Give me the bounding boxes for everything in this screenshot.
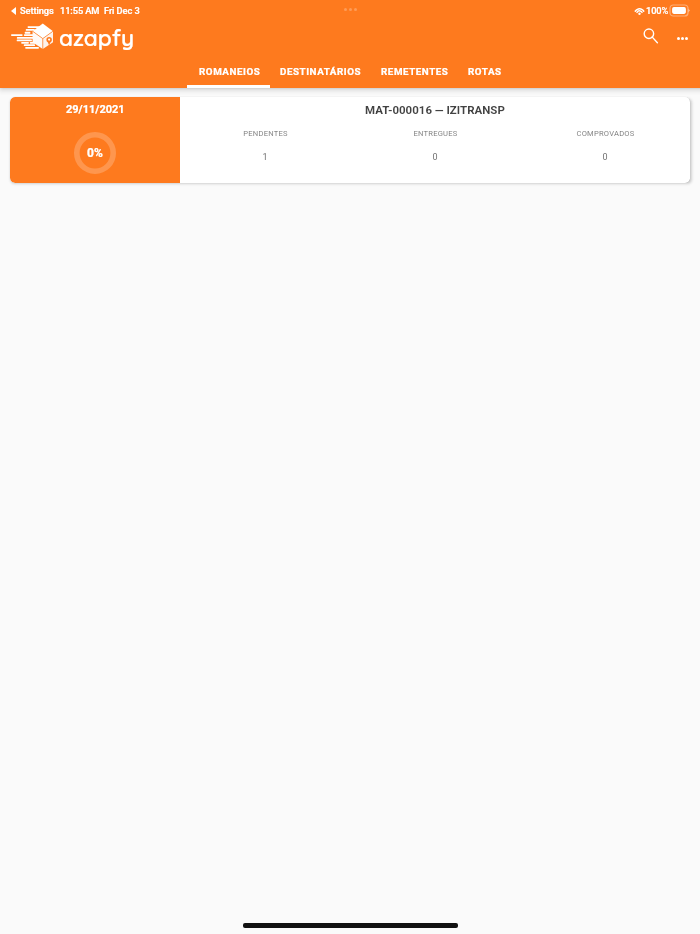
staticText: ROTAS bbox=[468, 66, 502, 77]
button[interactable]: ROTAS bbox=[457, 57, 510, 88]
staticText: DESTINATÁRIOS bbox=[280, 66, 362, 77]
staticText: 0 bbox=[602, 152, 608, 163]
button[interactable]: REMETENTES bbox=[370, 57, 457, 88]
staticText: 29/11/2021 bbox=[66, 103, 125, 116]
staticText: 0% bbox=[87, 146, 103, 160]
button[interactable]: Search bbox=[635, 23, 665, 53]
staticText: Settings bbox=[20, 5, 54, 16]
staticText: 1 bbox=[262, 152, 268, 163]
staticText: 100% bbox=[646, 5, 669, 16]
staticText: PENDENTES bbox=[243, 129, 288, 138]
staticText: COMPROVADOS bbox=[576, 129, 635, 138]
staticText: MAT-000016 — IZITRANSP bbox=[365, 103, 505, 116]
button[interactable]: More options bbox=[667, 23, 697, 53]
staticText: ROMANEIOS bbox=[199, 66, 261, 77]
staticText: azapfy bbox=[59, 23, 135, 51]
staticText: 0 bbox=[432, 152, 438, 163]
staticText: ENTREGUES bbox=[413, 129, 458, 138]
staticText: REMETENTES bbox=[381, 66, 449, 77]
staticText: 11:55 AM bbox=[60, 5, 100, 16]
button[interactable]: DESTINATÁRIOS bbox=[269, 57, 370, 88]
button[interactable]: ROMANEIOS bbox=[188, 57, 269, 88]
staticText: Fri Dec 3 bbox=[104, 5, 140, 16]
button[interactable]: 29/11/2021 bbox=[10, 97, 690, 183]
